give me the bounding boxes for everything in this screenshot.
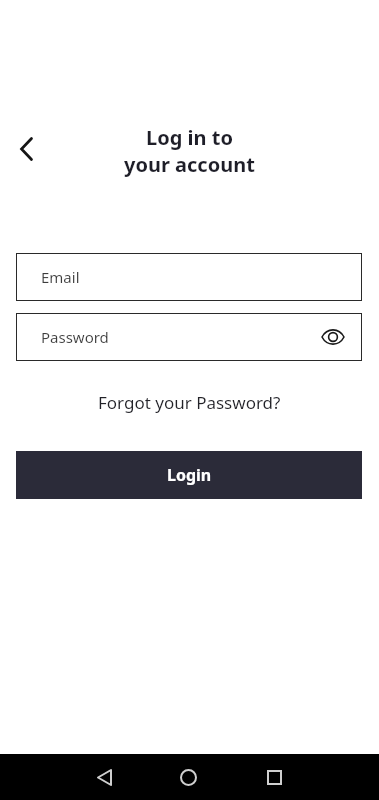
- button[interactable]: Login: [16, 451, 362, 499]
- staticText: your account: [124, 151, 255, 178]
- staticText: Login: [167, 464, 212, 486]
- button[interactable]: [174, 754, 202, 800]
- staticText: Email: [41, 267, 80, 287]
- button[interactable]: [10, 136, 42, 162]
- button[interactable]: [260, 754, 288, 800]
- staticText: Password: [41, 327, 109, 347]
- button[interactable]: Password: [16, 313, 362, 361]
- button[interactable]: Email: [16, 253, 362, 301]
- button[interactable]: [90, 754, 118, 800]
- button[interactable]: Forgot your Password?: [98, 391, 281, 414]
- staticText: Log in to: [146, 124, 233, 151]
